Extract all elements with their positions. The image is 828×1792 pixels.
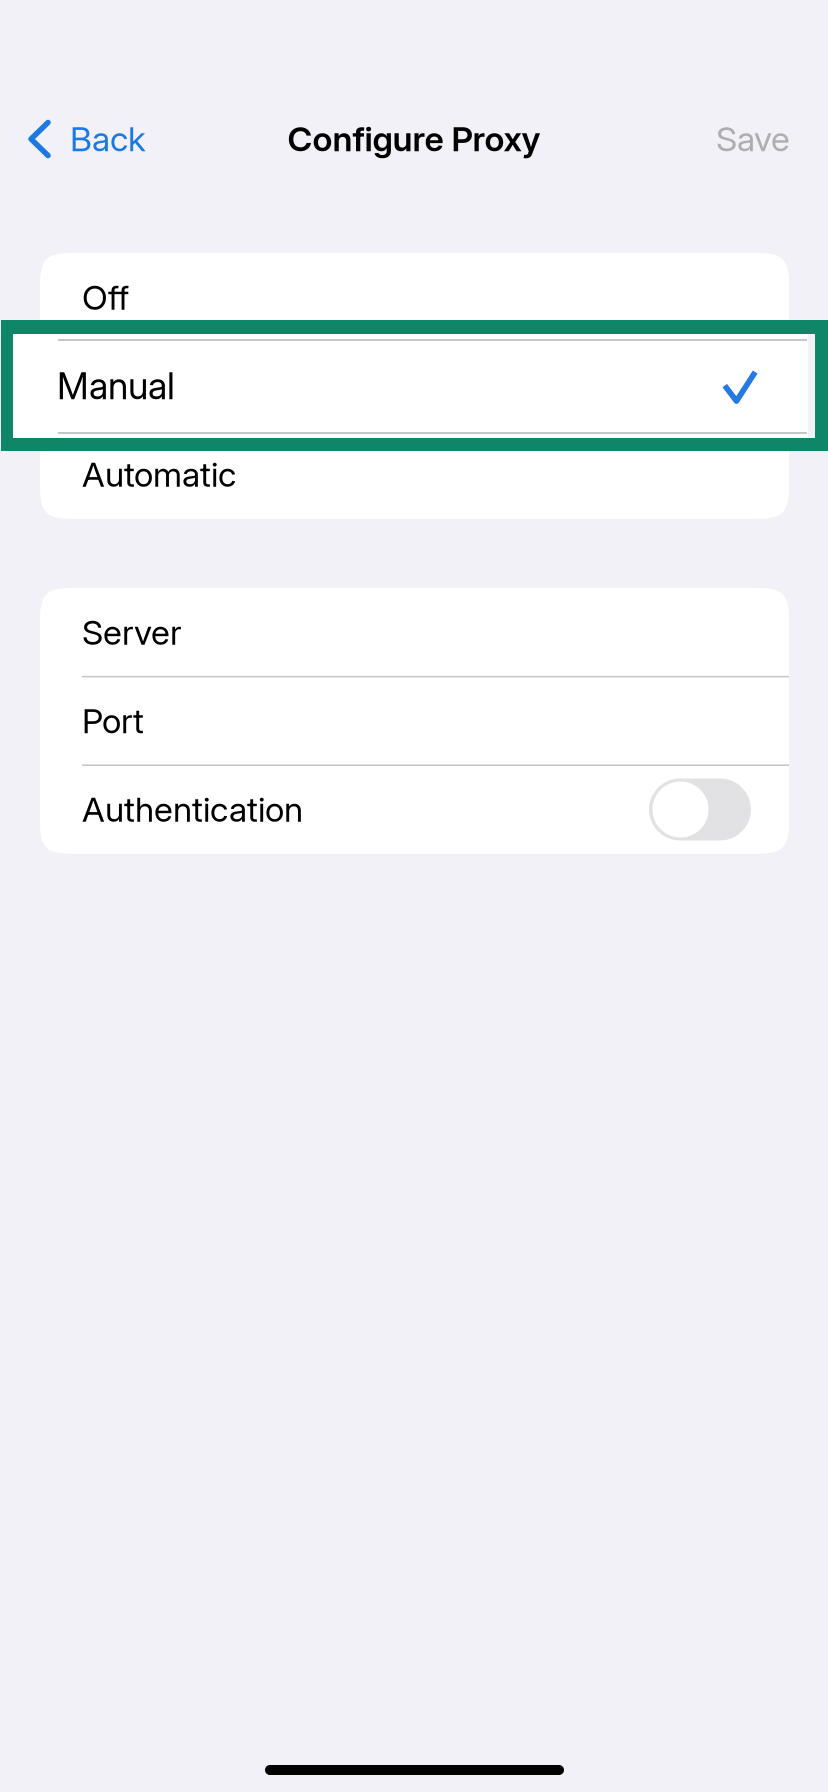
staticText: Back xyxy=(70,118,146,159)
button[interactable]: Authentication xyxy=(40,765,789,854)
staticText: Configure Proxy xyxy=(287,118,540,159)
staticText: Save xyxy=(716,118,790,159)
staticText: Server xyxy=(82,612,182,653)
staticText: Off xyxy=(82,277,129,318)
staticText: Authentication xyxy=(82,789,303,830)
button[interactable]: Off xyxy=(40,253,789,342)
button[interactable]: Automatic xyxy=(40,430,789,519)
button[interactable]: Manual xyxy=(40,342,789,430)
button[interactable]: Save xyxy=(676,95,828,183)
button[interactable]: Authentication, off xyxy=(649,778,751,840)
staticText: Automatic xyxy=(82,454,236,495)
staticText: Manual xyxy=(82,365,193,406)
button[interactable]: Back xyxy=(0,95,170,183)
staticText: Port xyxy=(82,700,144,741)
button[interactable]: Server xyxy=(40,588,789,677)
button[interactable]: Port xyxy=(40,677,789,765)
